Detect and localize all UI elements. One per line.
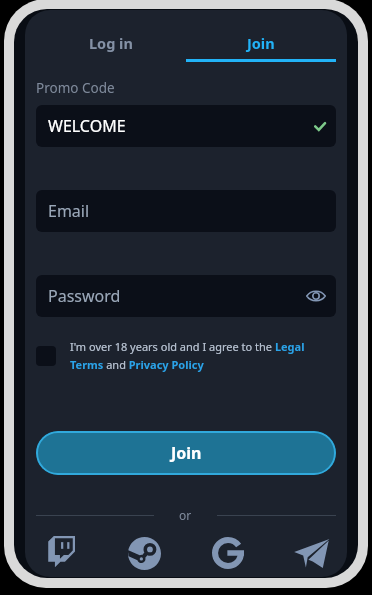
button[interactable]: Google [208, 533, 248, 573]
button[interactable]: Join [36, 431, 336, 475]
button[interactable]: Password [36, 275, 336, 317]
button[interactable]: WELCOME [36, 105, 336, 147]
staticText: Log in [89, 33, 133, 53]
button[interactable]: Join [186, 23, 336, 62]
staticText: Password [48, 285, 121, 307]
button[interactable]: Log in [36, 23, 186, 62]
button[interactable]: Twitch [40, 533, 80, 573]
staticText: WELCOME [48, 115, 126, 137]
button[interactable]: Steam [124, 533, 164, 573]
staticText: Join [171, 442, 202, 464]
staticText: Join [247, 33, 275, 53]
button[interactable]: Email [36, 190, 336, 232]
staticText: Email [48, 200, 90, 222]
button[interactable]: I'm over 18 years old and I agree to the… [36, 339, 336, 372]
staticText: or [179, 507, 192, 523]
staticText: I'm over 18 years old and I agree to the… [70, 339, 336, 372]
staticText: Promo Code [36, 79, 115, 97]
button[interactable]: Telegram [292, 533, 332, 573]
